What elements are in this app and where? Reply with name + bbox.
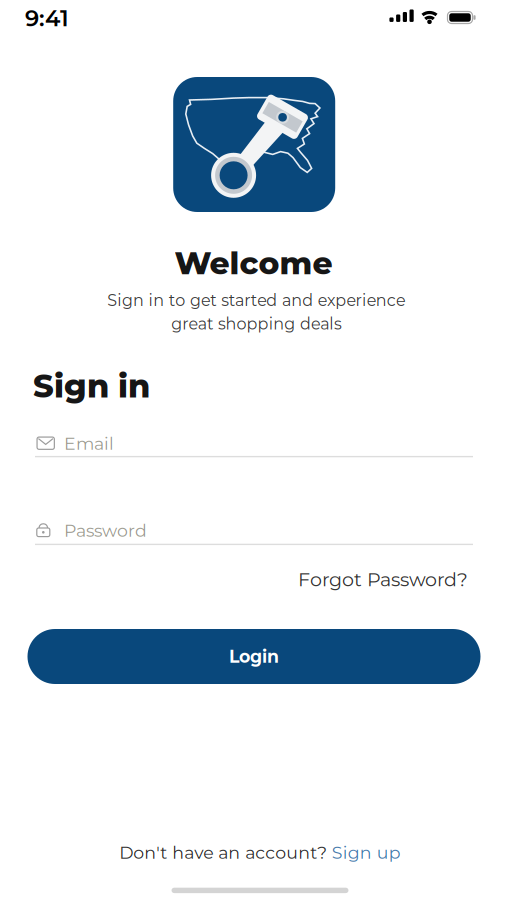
staticText: Don't have an account? <box>119 842 327 863</box>
staticText: Login <box>229 646 279 667</box>
staticText: Forgot Password? <box>298 568 468 591</box>
staticText: 9:41 <box>25 4 69 32</box>
textField[interactable]: Password <box>64 520 281 541</box>
staticText: Password <box>64 520 147 541</box>
staticText: Welcome <box>174 244 332 282</box>
button[interactable]: Sign up <box>332 842 401 863</box>
staticText: Email <box>64 433 114 454</box>
staticText: Sign in <box>33 366 150 405</box>
staticText: Sign in to get started and experience gr… <box>94 289 418 334</box>
button[interactable]: Forgot Password? <box>298 568 468 591</box>
textField[interactable]: Email <box>64 433 281 454</box>
button[interactable]: Login <box>27 629 480 684</box>
staticText: Sign up <box>332 842 401 863</box>
